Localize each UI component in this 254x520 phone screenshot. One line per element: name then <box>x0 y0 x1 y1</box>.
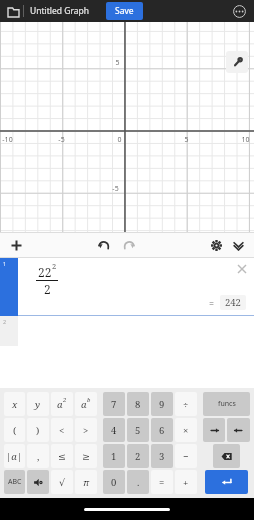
button[interactable]: , <box>27 444 49 468</box>
staticText: a <box>57 398 63 411</box>
button[interactable]: ÷ <box>175 392 197 416</box>
button[interactable]: |a| <box>4 444 25 468</box>
button[interactable]: 5 <box>127 418 149 442</box>
staticText: 22 <box>38 264 52 280</box>
staticText: 0 <box>117 135 122 145</box>
staticText: 5 <box>135 424 141 437</box>
button[interactable]: Move left <box>203 418 225 442</box>
button[interactable]: Save <box>106 2 143 20</box>
button[interactable]: a <box>75 392 97 416</box>
staticText: b <box>87 396 91 404</box>
staticText: 2 <box>44 281 51 297</box>
button[interactable]: Delete expression <box>235 262 249 276</box>
staticText: 2 <box>3 318 7 325</box>
button[interactable]: Move right <box>227 418 250 442</box>
button[interactable]: Enter <box>205 470 248 494</box>
staticText: 10 <box>241 135 250 145</box>
button[interactable]: x <box>4 392 25 416</box>
staticText: ABC <box>8 477 22 487</box>
staticText: x <box>12 398 18 411</box>
button[interactable]: < <box>51 418 73 442</box>
staticText: 0 <box>111 476 117 489</box>
staticText: 8 <box>135 398 141 411</box>
staticText: y <box>35 398 41 411</box>
button[interactable]: a <box>51 392 73 416</box>
staticText: Save <box>115 5 134 17</box>
staticText: 4 <box>111 424 117 437</box>
staticText: = <box>209 297 215 309</box>
staticText: -10 <box>2 135 13 145</box>
staticText: . <box>137 476 140 489</box>
button[interactable]: ≥ <box>75 444 97 468</box>
button[interactable]: More options <box>230 2 248 20</box>
button[interactable]: ≤ <box>51 444 73 468</box>
staticText: 1 <box>3 260 7 267</box>
button[interactable]: π <box>75 470 97 494</box>
button[interactable]: ) <box>27 418 49 442</box>
button[interactable]: 2 <box>0 316 254 346</box>
staticText: 5 <box>184 135 189 145</box>
button[interactable]: 4 <box>103 418 125 442</box>
button[interactable]: Graph settings <box>226 51 248 73</box>
staticText: ≥ <box>82 451 90 462</box>
staticText: ) <box>36 424 40 437</box>
button[interactable]: Undo <box>94 235 114 255</box>
button[interactable]: ABC <box>4 470 25 494</box>
staticText: 9 <box>159 398 165 411</box>
staticText: |a| <box>6 450 23 463</box>
staticText: Untitled Graph <box>30 5 89 17</box>
staticText: × <box>183 424 189 437</box>
button[interactable]: 7 <box>103 392 125 416</box>
button[interactable]: 6 <box>151 418 173 442</box>
button[interactable]: Settings <box>206 235 226 255</box>
button[interactable]: Collapse <box>228 235 248 255</box>
button[interactable]: Open folder <box>4 2 22 20</box>
button[interactable]: y <box>27 392 49 416</box>
staticText: > <box>83 424 89 437</box>
button[interactable]: 0 <box>103 470 125 494</box>
button[interactable]: ( <box>4 418 25 442</box>
button[interactable]: 8 <box>127 392 149 416</box>
staticText: √ <box>59 477 66 488</box>
button[interactable]: 1 <box>0 258 254 316</box>
staticText: 5 <box>115 58 120 68</box>
button[interactable]: funcs <box>203 392 250 416</box>
staticText: π <box>83 476 90 489</box>
button[interactable]: = <box>151 470 173 494</box>
staticText: 6 <box>159 424 165 437</box>
staticText: 2 <box>135 450 141 463</box>
staticText: = <box>159 476 165 489</box>
staticText: − <box>183 450 189 463</box>
staticText: 7 <box>111 398 117 411</box>
staticText: 1 <box>111 450 117 463</box>
button[interactable]: + <box>175 470 197 494</box>
staticText: , <box>37 450 40 463</box>
staticText: -5 <box>58 135 65 145</box>
button[interactable]: Add expression <box>6 235 26 255</box>
button[interactable]: Backspace <box>213 444 240 468</box>
button[interactable]: > <box>75 418 97 442</box>
button[interactable]: 9 <box>151 392 173 416</box>
staticText: 2 <box>52 261 57 271</box>
staticText: ≤ <box>58 451 66 462</box>
button[interactable]: 2 <box>127 444 149 468</box>
staticText: funcs <box>218 399 236 409</box>
button[interactable]: √ <box>51 470 73 494</box>
staticText: 242 <box>225 296 241 309</box>
staticText: ÷ <box>183 398 189 411</box>
staticText: 3 <box>159 450 165 463</box>
button[interactable]: . <box>127 470 149 494</box>
staticText: < <box>59 424 65 437</box>
staticText: ( <box>13 424 17 437</box>
staticText: 2 <box>63 396 67 404</box>
button[interactable]: × <box>175 418 197 442</box>
button[interactable]: Redo <box>119 235 139 255</box>
staticText: a <box>81 398 87 411</box>
button[interactable]: − <box>175 444 197 468</box>
staticText: + <box>183 476 189 489</box>
button[interactable]: 1 <box>103 444 125 468</box>
button[interactable]: Sound <box>27 470 49 494</box>
button[interactable]: 3 <box>151 444 173 468</box>
staticText: -5 <box>112 184 119 194</box>
